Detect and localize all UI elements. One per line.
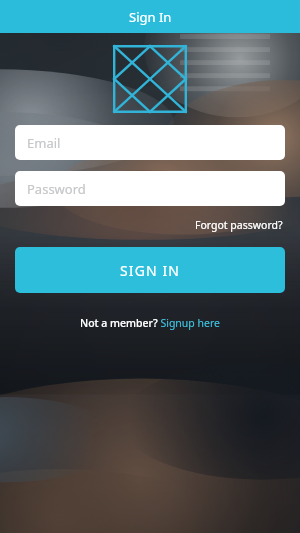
button[interactable]: SIGN IN	[15, 247, 285, 293]
staticText: SIGN IN	[120, 261, 180, 280]
button[interactable]: Password	[15, 171, 285, 206]
button[interactable]: Email	[15, 125, 285, 160]
staticText: Password	[27, 180, 86, 198]
button[interactable]: Not a member? Signup here	[76, 313, 224, 333]
staticText: Forgot password?	[195, 218, 283, 232]
button[interactable]: Forgot password?	[193, 215, 285, 235]
staticText: Not a member? Signup here	[80, 316, 220, 330]
staticText: Sign In	[129, 8, 172, 26]
staticText: Email	[27, 134, 61, 152]
